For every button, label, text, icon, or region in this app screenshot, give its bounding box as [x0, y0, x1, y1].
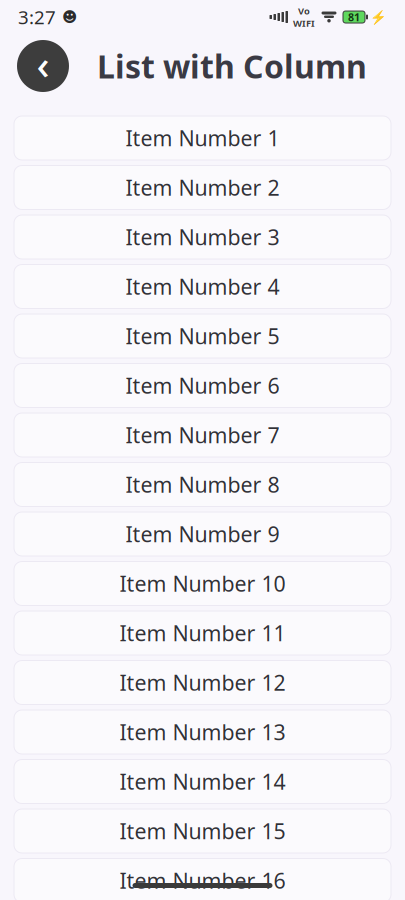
- button[interactable]: Item Number 15: [14, 809, 391, 853]
- button[interactable]: Item Number 1: [14, 116, 391, 160]
- button[interactable]: Item Number 2: [14, 165, 391, 209]
- staticText: WIFI: [293, 17, 315, 29]
- button[interactable]: Item Number 6: [14, 363, 391, 407]
- staticText: Item Number 14: [119, 767, 285, 796]
- staticText: Item Number 4: [125, 272, 279, 301]
- button[interactable]: Item Number 16: [14, 858, 391, 900]
- button[interactable]: Item Number 14: [14, 759, 391, 803]
- staticText: Item Number 12: [119, 668, 285, 697]
- button[interactable]: Item Number 9: [14, 512, 391, 556]
- staticText: ‹: [36, 37, 49, 90]
- button[interactable]: Item Number 10: [14, 561, 391, 605]
- staticText: Item Number 6: [125, 371, 279, 400]
- button[interactable]: Item Number 12: [14, 660, 391, 704]
- staticText: 81: [348, 10, 360, 24]
- staticText: ⚡: [370, 9, 387, 25]
- staticText: List with Column: [97, 45, 367, 87]
- staticText: Item Number 15: [119, 817, 285, 845]
- button[interactable]: Item Number 4: [14, 264, 391, 308]
- staticText: 3:27: [18, 5, 56, 29]
- staticText: Item Number 11: [119, 619, 285, 647]
- staticText: Vo: [298, 5, 310, 17]
- staticText: Item Number 9: [125, 520, 279, 548]
- button[interactable]: Item Number 11: [14, 611, 391, 655]
- staticText: Item Number 10: [119, 569, 285, 598]
- staticText: Item Number 1: [125, 124, 279, 152]
- staticText: ☻: [62, 9, 77, 25]
- staticText: Item Number 16: [119, 866, 285, 895]
- staticText: Item Number 5: [125, 322, 279, 350]
- staticText: Item Number 3: [125, 223, 279, 251]
- button[interactable]: Item Number 3: [14, 215, 391, 259]
- button[interactable]: Item Number 7: [14, 413, 391, 457]
- staticText: Item Number 2: [125, 173, 279, 202]
- button[interactable]: Back: [17, 40, 69, 92]
- staticText: Item Number 8: [125, 470, 279, 499]
- staticText: Item Number 7: [125, 421, 279, 449]
- button[interactable]: Item Number 8: [14, 462, 391, 506]
- staticText: Item Number 13: [119, 718, 285, 746]
- button[interactable]: Item Number 5: [14, 314, 391, 358]
- button[interactable]: Item Number 13: [14, 710, 391, 754]
